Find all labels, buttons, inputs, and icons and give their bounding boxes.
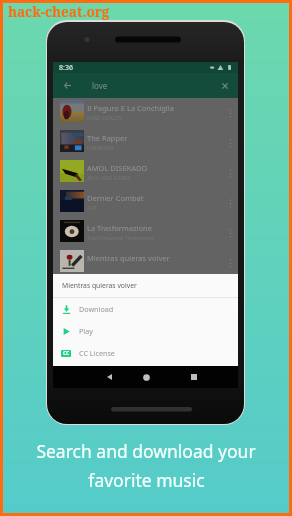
- button[interactable]: Back: [53, 73, 81, 98]
- staticText: Mientras quieras volver: [62, 281, 137, 290]
- button[interactable]: CC: [53, 342, 238, 364]
- staticText: Play: [79, 326, 93, 336]
- staticText: hack-cheat.org: [8, 3, 110, 21]
- staticText: Search and download your: [36, 439, 256, 463]
- staticText: The Rapper: [87, 133, 128, 143]
- button[interactable]: La Trasformazione: [53, 218, 238, 248]
- button[interactable]: Il Paguro E La Conchiglia: [53, 98, 238, 128]
- staticText: CC: [63, 350, 70, 357]
- button[interactable]: The Rapper: [53, 128, 238, 158]
- staticText: 8:36: [59, 63, 73, 73]
- staticText: favorite music: [88, 468, 205, 492]
- button[interactable]: Download: [53, 298, 238, 320]
- staticText: love: [92, 80, 108, 91]
- button[interactable]: Play: [53, 320, 238, 342]
- button[interactable]: Recent apps: [183, 366, 205, 388]
- staticText: Download: [79, 304, 114, 314]
- staticText: Il Paguro E La Conchiglia: [87, 103, 174, 113]
- staticText: HARD QUALITY: [87, 115, 123, 122]
- staticText: CC License: [79, 348, 115, 358]
- button[interactable]: Dernier Combat: [53, 188, 238, 218]
- staticText: Mientras quieras volver: [87, 253, 170, 263]
- button[interactable]: Mientras quieras volver: [53, 248, 238, 278]
- staticText: ADS: [87, 205, 97, 212]
- button[interactable]: Clear search: [212, 73, 238, 98]
- staticText: Trasformazione Trasformare: [87, 235, 154, 242]
- button[interactable]: AMOL DISEKADO: [53, 158, 238, 188]
- staticText: AMOL DISEKADO: [87, 163, 148, 173]
- button[interactable]: Home: [135, 366, 157, 388]
- button[interactable]: More options: [222, 248, 238, 278]
- button[interactable]: Back: [98, 366, 120, 388]
- staticText: UNKNOWN: [87, 145, 114, 152]
- staticText: 2013 LOCA SONGS: [87, 175, 131, 182]
- staticText: Dernier Combat: [87, 193, 144, 203]
- staticText: La Trasformazione: [87, 223, 152, 233]
